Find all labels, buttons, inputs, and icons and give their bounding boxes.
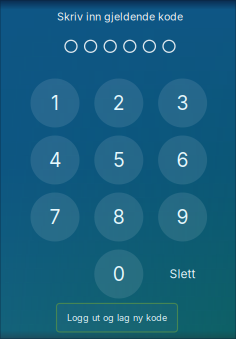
- button[interactable]: 1: [30, 78, 79, 127]
- button[interactable]: 4: [30, 135, 79, 184]
- button[interactable]: 3: [158, 78, 207, 127]
- staticText: Skriv inn gjeldende kode: [57, 10, 183, 23]
- button[interactable]: 6: [158, 135, 207, 184]
- button[interactable]: 5: [94, 135, 143, 184]
- staticText: 9: [177, 205, 189, 229]
- staticText: 2: [113, 91, 125, 115]
- button[interactable]: 0: [94, 249, 143, 298]
- button[interactable]: Slett: [158, 249, 207, 298]
- staticText: 7: [49, 205, 60, 229]
- button[interactable]: 2: [94, 78, 143, 127]
- staticText: 4: [49, 148, 61, 172]
- staticText: 0: [113, 262, 125, 286]
- staticText: Slett: [170, 267, 196, 281]
- staticText: 6: [177, 148, 189, 172]
- staticText: 5: [113, 148, 124, 172]
- button[interactable]: 9: [158, 192, 207, 241]
- staticText: 3: [177, 91, 189, 115]
- staticText: Logg ut og lag ny kode: [67, 312, 167, 323]
- button[interactable]: Logg ut og lag ny kode: [56, 303, 177, 332]
- button[interactable]: 8: [94, 192, 143, 241]
- staticText: 1: [51, 91, 59, 115]
- staticText: 8: [113, 205, 125, 229]
- button[interactable]: 7: [30, 192, 79, 241]
